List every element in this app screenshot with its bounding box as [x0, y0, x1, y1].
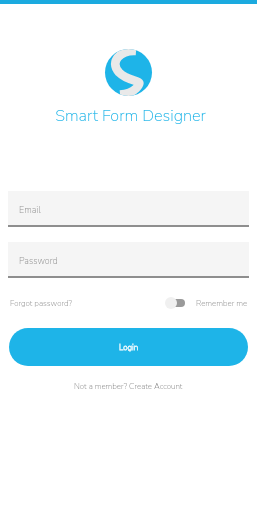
- button[interactable]: Email: [8, 191, 249, 227]
- button[interactable]: Password: [8, 242, 249, 278]
- button[interactable]: Not a member? Create Account: [74, 381, 183, 392]
- staticText: Email: [19, 204, 41, 216]
- staticText: Remember me: [196, 298, 248, 309]
- button[interactable]: Forgot password?: [8, 295, 74, 311]
- button[interactable]: Login: [9, 328, 248, 366]
- staticText: Password: [19, 255, 58, 267]
- staticText: Login: [119, 342, 139, 353]
- staticText: Forgot password?: [10, 298, 72, 309]
- staticText: Smart Form Designer: [2, 105, 257, 127]
- button[interactable]: Remember me: [165, 295, 248, 311]
